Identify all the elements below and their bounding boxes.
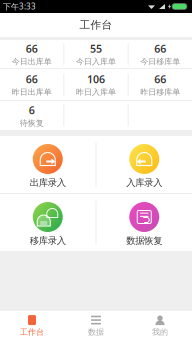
- staticText: 我的: [152, 327, 168, 337]
- staticText: 66: [154, 41, 166, 56]
- staticText: 工作台: [79, 18, 112, 31]
- staticText: 入库录入: [126, 177, 162, 188]
- staticText: 昨日移库单: [140, 87, 180, 97]
- staticText: 工作台: [20, 327, 44, 337]
- staticText: 移库录入: [30, 235, 66, 246]
- staticText: 66: [26, 41, 38, 56]
- staticText: 今日入库单: [76, 57, 116, 66]
- staticText: 数据: [88, 327, 104, 337]
- button[interactable]: 数据恢复: [96, 194, 192, 251]
- staticText: 待恢复: [20, 118, 44, 128]
- staticText: 昨日出库单: [12, 87, 52, 97]
- staticText: 55: [90, 41, 102, 56]
- button[interactable]: 移库录入: [0, 194, 95, 251]
- staticText: 106: [87, 72, 105, 86]
- staticText: 昨日入库单: [76, 87, 116, 97]
- staticText: 66: [154, 72, 166, 86]
- button[interactable]: 出库录入: [0, 136, 95, 193]
- button[interactable]: 入库录入: [96, 136, 192, 193]
- staticText: 出库录入: [30, 177, 66, 188]
- staticText: 数据恢复: [126, 235, 162, 246]
- button[interactable]: 工作台: [0, 311, 64, 341]
- button[interactable]: 我的: [128, 311, 192, 341]
- staticText: 6: [29, 103, 35, 117]
- staticText: 今日出库单: [12, 57, 52, 66]
- staticText: 今日移库单: [140, 57, 180, 66]
- staticText: 66: [26, 72, 38, 86]
- staticText: 下午3:33: [3, 1, 36, 12]
- button[interactable]: 数据: [64, 311, 128, 341]
